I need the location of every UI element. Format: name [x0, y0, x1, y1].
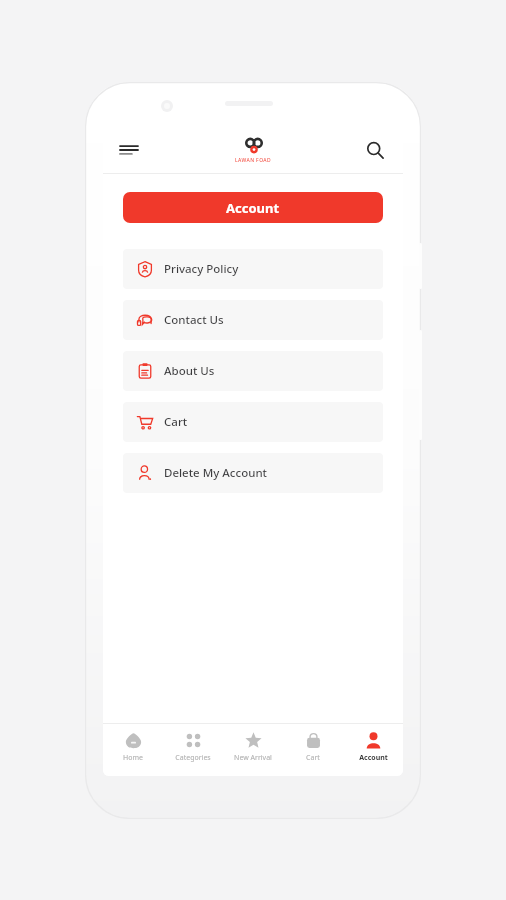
- staticText: New Arrival: [234, 753, 272, 763]
- staticText: Account: [359, 753, 388, 763]
- button[interactable]: Account: [123, 192, 383, 223]
- staticText: Account: [226, 199, 280, 217]
- button[interactable]: Home: [103, 724, 163, 776]
- button[interactable]: Cart: [283, 724, 343, 776]
- button[interactable]: Cart: [123, 402, 383, 442]
- staticText: Delete My Account: [164, 465, 268, 481]
- staticText: LAWAN FOAD: [235, 157, 272, 164]
- button[interactable]: Privacy Policy: [123, 249, 383, 289]
- staticText: Privacy Policy: [164, 261, 239, 277]
- button[interactable]: About Us: [123, 351, 383, 391]
- button[interactable]: Menu: [113, 134, 145, 166]
- staticText: About Us: [164, 363, 215, 379]
- button[interactable]: New Arrival: [223, 724, 283, 776]
- button[interactable]: Categories: [163, 724, 223, 776]
- staticText: Cart: [306, 753, 320, 763]
- button[interactable]: Search: [359, 134, 391, 166]
- button[interactable]: Contact Us: [123, 300, 383, 340]
- staticText: Categories: [175, 753, 211, 763]
- staticText: Cart: [164, 414, 188, 430]
- staticText: Home: [123, 753, 143, 763]
- button[interactable]: Account: [343, 724, 403, 776]
- button[interactable]: Delete My Account: [123, 453, 383, 493]
- staticText: Contact Us: [164, 312, 224, 328]
